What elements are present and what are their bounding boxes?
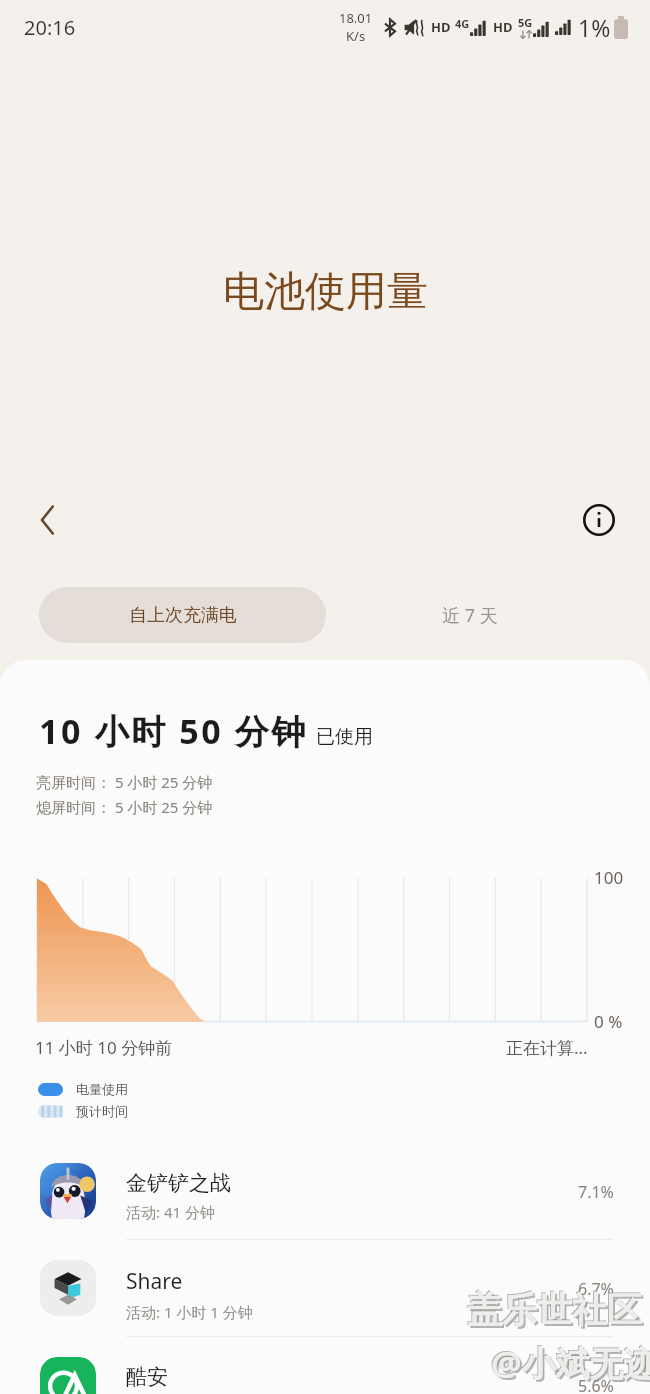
staticText: @小斌无迹 (493, 1342, 650, 1388)
staticText: 盖乐世社区 (467, 1288, 642, 1332)
staticText: 活动: 1 小时 1 分钟 (126, 1302, 253, 1322)
staticText: HD (431, 18, 451, 36)
staticText: 1% (578, 12, 611, 43)
staticText: 5G (518, 15, 533, 30)
button[interactable]: 金铲铲之战 (0, 1143, 650, 1240)
staticText: 6.7% (578, 1278, 614, 1300)
staticText: 20:16 (24, 14, 76, 41)
staticText: 11 小时 10 分钟前 (35, 1036, 173, 1059)
button[interactable]: Share (0, 1240, 650, 1337)
staticText: 18.01 (339, 9, 373, 27)
staticText: 7.1% (578, 1181, 614, 1203)
staticText: HD (493, 18, 513, 36)
staticText: 亮屏时间： 5 小时 25 分钟 (36, 772, 213, 792)
staticText: K/s (346, 27, 366, 45)
button[interactable]: Information (575, 496, 623, 544)
staticText: 5.6% (578, 1375, 614, 1394)
staticText: 酷安 (126, 1364, 168, 1390)
staticText: @小斌无迹 (491, 1340, 650, 1386)
staticText: @小斌无迹 (490, 1339, 650, 1385)
staticText: 预计时间 (76, 1103, 128, 1119)
staticText: 0 % (594, 1010, 623, 1033)
staticText: 自上次充满电 (129, 604, 237, 627)
button[interactable]: Back (20, 492, 76, 548)
staticText: 10 小时 50 分钟 (39, 708, 308, 754)
staticText: 电量使用 (76, 1081, 128, 1097)
staticText: 正在计算... (506, 1036, 588, 1059)
staticText: 近 7 天 (442, 603, 498, 628)
staticText: 电池使用量 (223, 266, 428, 318)
staticText: 4G (455, 16, 470, 31)
button[interactable]: 自上次充满电 (39, 587, 326, 643)
staticText: 活动: 41 分钟 (126, 1202, 215, 1222)
button[interactable]: 近 7 天 (326, 587, 613, 643)
staticText: 100 (594, 866, 624, 889)
staticText: 熄屏时间： 5 小时 25 分钟 (36, 797, 213, 817)
staticText: 金铲铲之战 (126, 1170, 231, 1196)
staticText: Share (126, 1267, 183, 1296)
staticText: 盖乐世社区 (469, 1290, 644, 1334)
staticText: 盖乐世社区 (466, 1287, 641, 1331)
staticText: 已使用 (316, 725, 373, 749)
button[interactable]: 酷安 (0, 1337, 650, 1394)
